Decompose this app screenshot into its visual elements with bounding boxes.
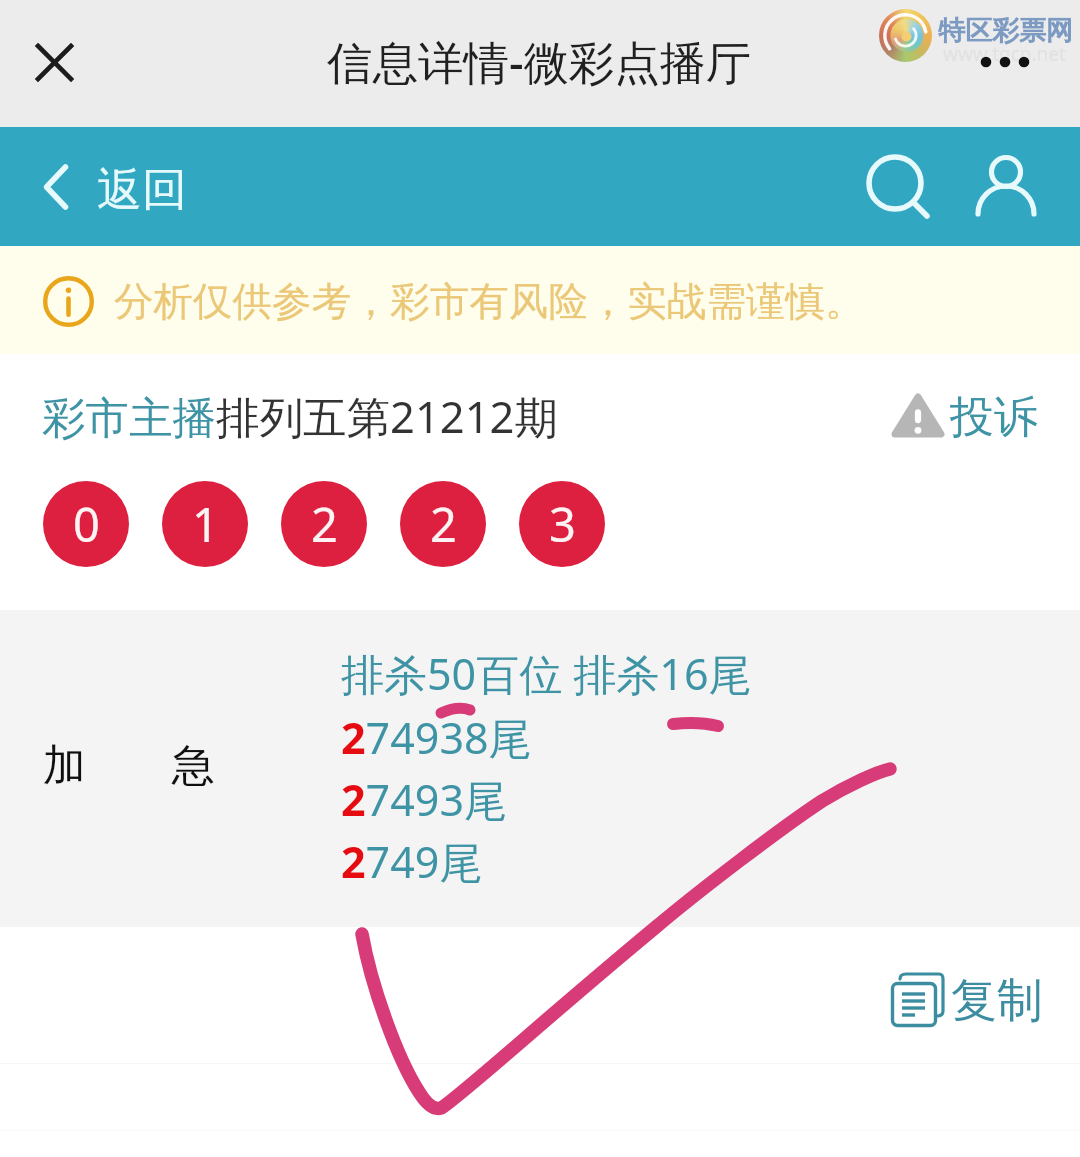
staticText: 返回 xyxy=(97,162,187,219)
button[interactable]: 2 xyxy=(281,481,367,567)
staticText: 加 xyxy=(43,739,86,793)
staticText: 274938尾 xyxy=(341,708,532,767)
staticText: 投诉 xyxy=(950,390,1038,445)
staticText: 特区彩票网 xyxy=(938,14,1073,48)
staticText: 0 xyxy=(73,492,100,556)
staticText: 分析仅供参考，彩市有风险，实战需谨慎。 xyxy=(114,277,865,327)
button[interactable]: 3 xyxy=(519,481,605,567)
button[interactable]: 0 xyxy=(43,481,129,567)
button[interactable]: 1 xyxy=(162,481,248,567)
button[interactable]: 2 xyxy=(400,481,486,567)
staticText: 27493尾 xyxy=(341,770,507,829)
button[interactable]: Close xyxy=(0,8,108,116)
button[interactable]: 复制 xyxy=(892,962,1043,1030)
staticText: 排杀50百位 排杀16尾 xyxy=(341,644,752,703)
staticText: 2749尾 xyxy=(341,832,483,891)
staticText: 2 xyxy=(430,492,457,556)
staticText: 3 xyxy=(549,492,576,556)
staticText: 2 xyxy=(311,492,338,556)
staticText: 彩市主播排列五第21212期 xyxy=(42,386,558,445)
staticText: 复制 xyxy=(951,972,1043,1030)
button[interactable]: 返回 xyxy=(44,127,187,246)
button[interactable]: Profile xyxy=(962,139,1050,227)
staticText: www.tqcp.net xyxy=(943,41,1066,67)
button[interactable]: 投诉 xyxy=(885,383,1045,445)
staticText: 1 xyxy=(192,492,219,556)
staticText: 急 xyxy=(172,739,215,793)
staticText: 信息详情-微彩点播厅 xyxy=(327,30,752,92)
button[interactable]: Search xyxy=(851,139,939,227)
